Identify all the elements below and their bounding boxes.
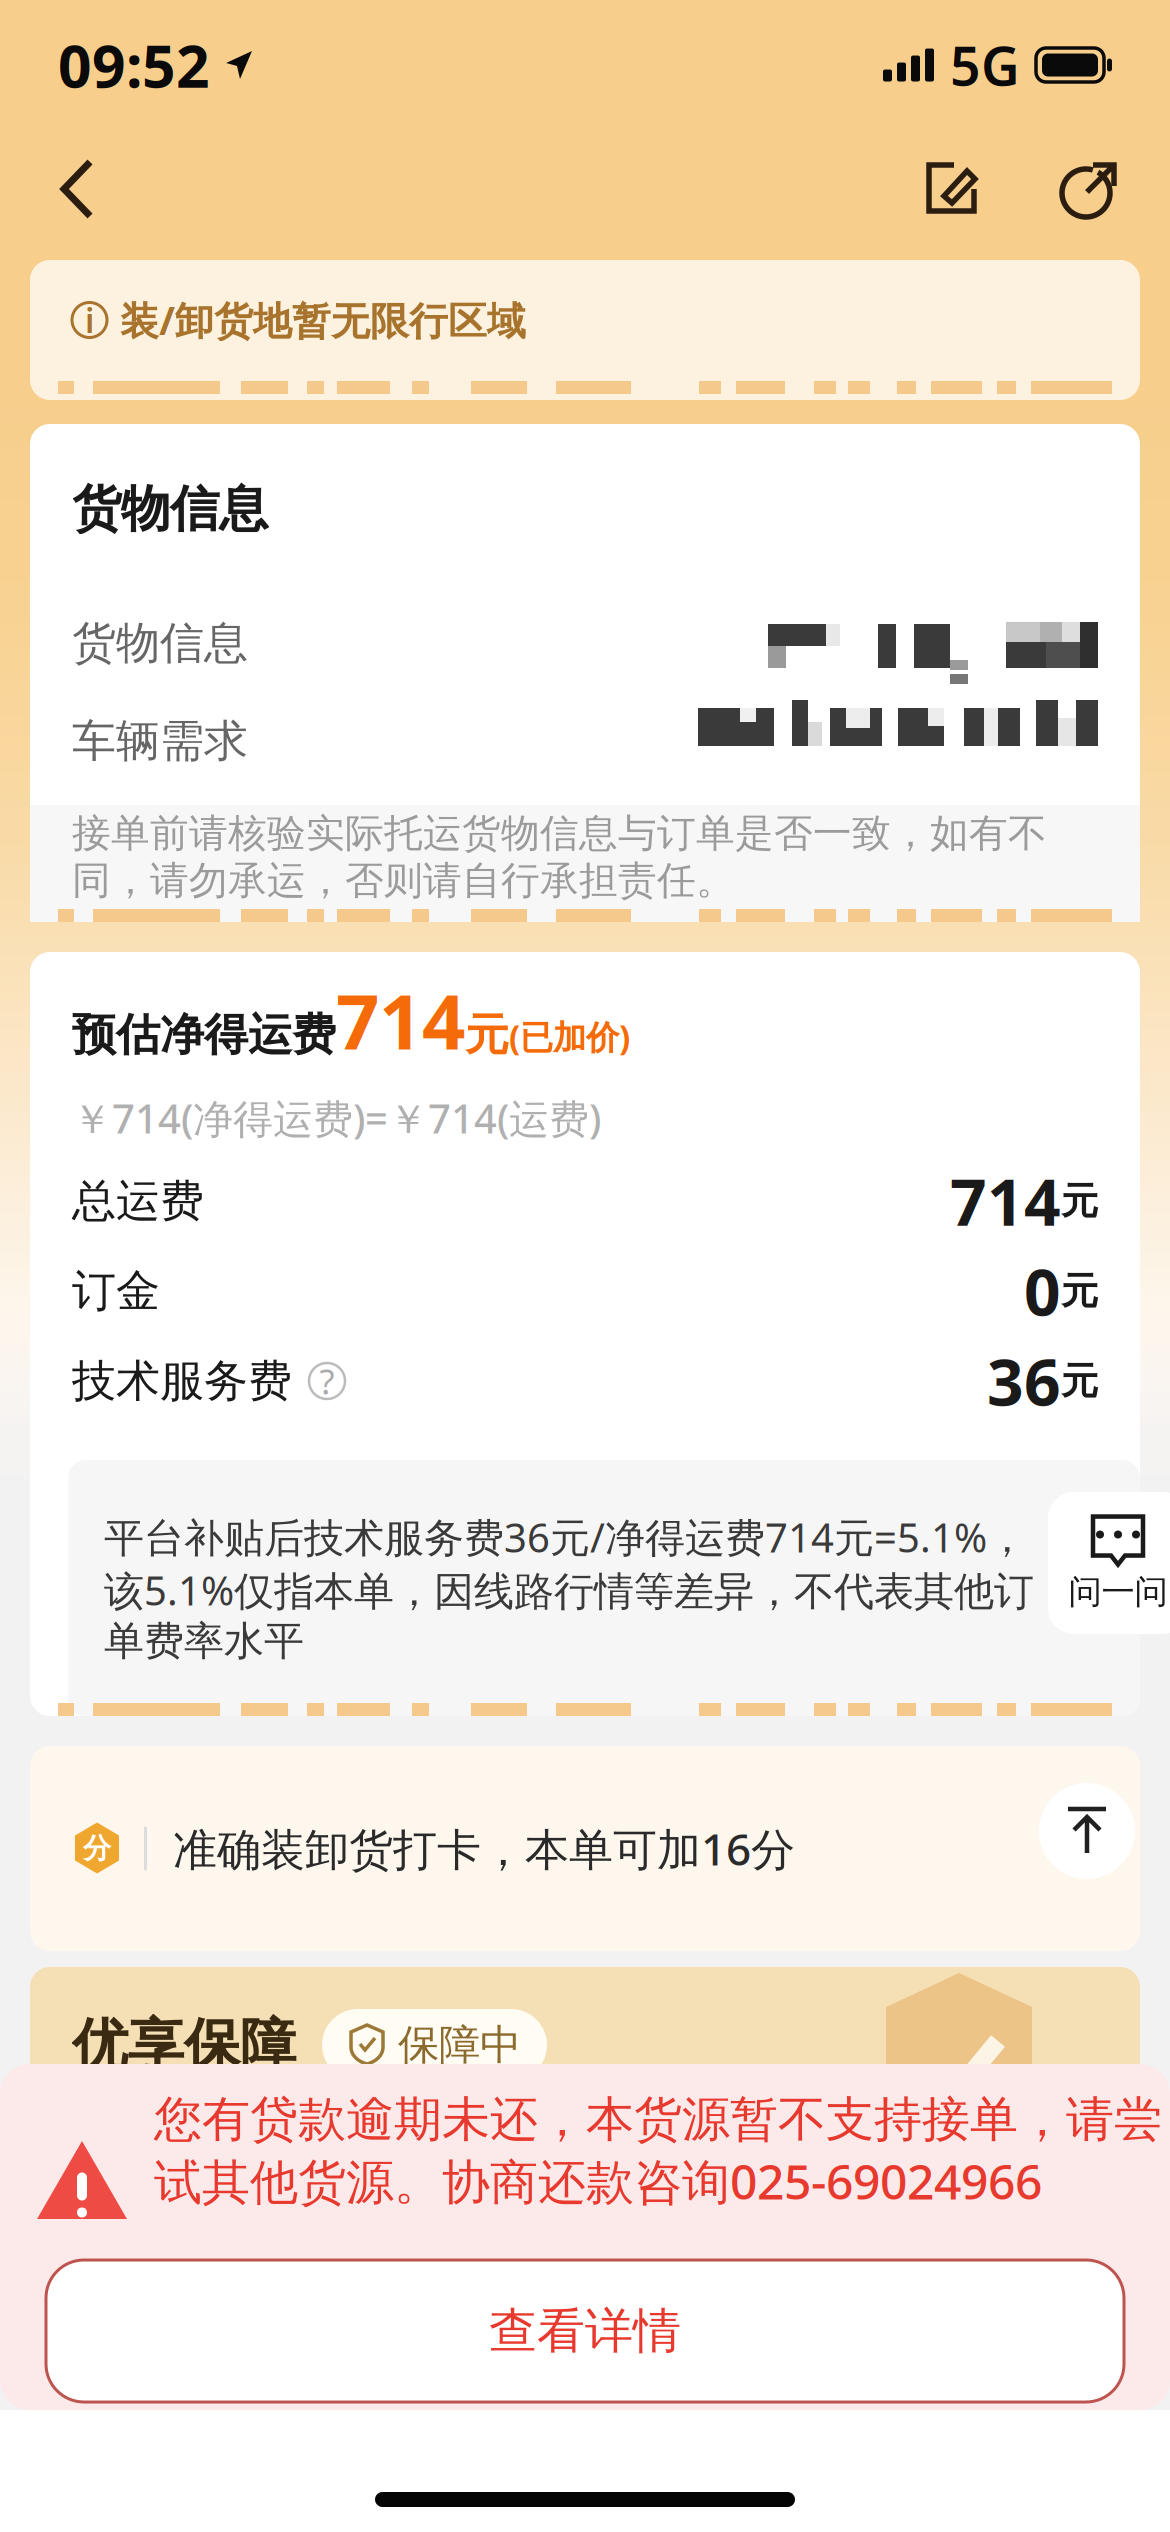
button[interactable]: Scroll to top xyxy=(1039,1783,1135,1879)
staticText: 技术服务费 xyxy=(72,1354,292,1408)
staticText: 5G xyxy=(950,30,1020,100)
staticText: 平台补贴后技术服务费36元/净得运费714元=5.1%， 该5.1%仅指本单，因… xyxy=(104,1510,1034,1666)
staticText: 分 xyxy=(83,1831,111,1866)
staticText: 准确装卸货打卡，本单可加16分 xyxy=(173,1819,795,1878)
staticText: ￥714(净得运费)=￥714(运费) xyxy=(72,1091,601,1144)
staticText: 查看详情 xyxy=(489,2301,681,2360)
staticText: 装/卸货地暂无限行区域 xyxy=(120,294,526,346)
button[interactable]: Share xyxy=(1040,139,1136,239)
staticText: 货物信息 xyxy=(72,479,268,539)
staticText: 元 xyxy=(1061,1268,1098,1314)
staticText: 0 xyxy=(1024,1248,1061,1333)
staticText: 订金 xyxy=(72,1264,160,1318)
staticText: 车辆需求 xyxy=(72,714,248,768)
staticText: 问一问 xyxy=(1068,1571,1167,1612)
staticText: ? xyxy=(319,1358,334,1404)
staticText: 09:52 xyxy=(58,26,210,104)
staticText: 36 xyxy=(987,1338,1061,1423)
staticText: 货物信息 xyxy=(72,616,248,670)
staticText: 元 xyxy=(465,1008,509,1062)
staticText: 接单前请核验实际托运货物信息与订单是否一致，如有不 同，请勿承运，否则请自行承担… xyxy=(72,809,1047,904)
staticText: 总运费 xyxy=(72,1174,204,1228)
staticText: 714 xyxy=(336,969,465,1070)
button[interactable]: 问一问 xyxy=(1048,1492,1170,1634)
staticText: 714 xyxy=(950,1158,1061,1243)
staticText: 保障中 xyxy=(398,2020,521,2070)
staticText: 元 xyxy=(1061,1358,1098,1404)
staticText: 优享保障 xyxy=(72,2011,296,2079)
staticText: 元 xyxy=(1061,1178,1098,1224)
button[interactable]: Edit xyxy=(904,139,1000,239)
staticText: 预估净得运费 xyxy=(72,1008,336,1062)
staticText: (已加价) xyxy=(509,1014,630,1059)
staticText: i xyxy=(85,298,94,342)
button[interactable]: Back xyxy=(34,138,120,240)
staticText: 您有贷款逾期未还，本货源暂不支持接单，请尝 试其他货源。协商还款咨询025-69… xyxy=(154,2090,1162,2213)
button[interactable]: 查看详情 xyxy=(46,2260,1124,2402)
